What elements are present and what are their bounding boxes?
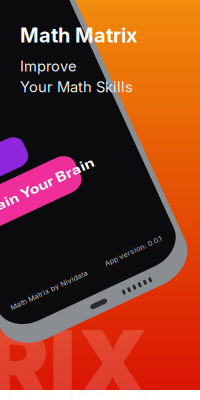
staticText: Improve — [20, 57, 77, 75]
staticText: RIX — [0, 307, 149, 400]
staticText: Math Matrix — [20, 23, 138, 47]
staticText: Your Math Skills — [20, 78, 133, 96]
staticText: App version: 0.0.1 — [113, 357, 171, 365]
staticText: Math Matrix by Nividata — [17, 357, 95, 365]
staticText: Train Your Brain — [29, 238, 143, 256]
